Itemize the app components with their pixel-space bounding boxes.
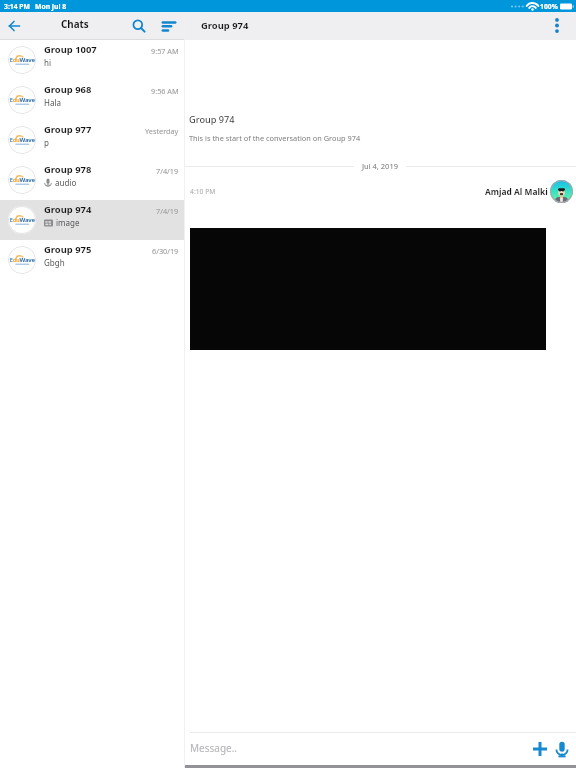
staticText: Group 978 (44, 163, 92, 176)
button[interactable]: E (0, 240, 184, 280)
button[interactable]: E (0, 120, 184, 160)
button[interactable]: Attach (530, 739, 550, 759)
staticText: E (9, 55, 13, 64)
staticText: audio (55, 177, 77, 188)
staticText: Yesterday (145, 126, 179, 136)
staticText: E (9, 135, 13, 144)
staticText: du (13, 136, 20, 144)
button[interactable]: More options (547, 16, 567, 36)
staticText: Group 974 (44, 203, 92, 216)
staticText: E (9, 255, 13, 264)
button[interactable]: E (0, 200, 184, 240)
staticText: Group 974 (189, 113, 235, 126)
button[interactable]: E (0, 80, 184, 120)
staticText: Wave (20, 135, 35, 144)
staticText: E (9, 215, 13, 224)
staticText: Gbgh (44, 257, 65, 268)
staticText: du (13, 96, 20, 104)
staticText: hi (44, 57, 52, 68)
staticText: du (13, 216, 20, 224)
staticText: Group 1007 (44, 43, 97, 56)
button[interactable]: E (0, 40, 184, 80)
staticText: 6/30/19 (152, 246, 179, 256)
staticText: 7/4/19 (156, 166, 179, 176)
button[interactable]: Search (128, 16, 148, 36)
button[interactable]: Record voice (552, 739, 572, 759)
staticText: E (9, 175, 13, 184)
staticText: 3:14 PM (4, 2, 30, 11)
staticText: 9:57 AM (151, 46, 179, 56)
staticText: Amjad Al Malki (485, 186, 548, 197)
staticText: Wave (20, 215, 35, 224)
staticText: du (13, 56, 20, 64)
staticText: This is the start of the conversation on… (189, 133, 361, 143)
staticText: image (56, 217, 80, 228)
staticText: 9:56 AM (151, 86, 179, 96)
staticText: Wave (20, 175, 35, 184)
staticText: Wave (20, 255, 35, 264)
staticText: Message.. (190, 741, 238, 755)
staticText: Jul 4, 2019 (362, 161, 398, 171)
staticText: Chats (61, 18, 89, 31)
staticText: du (13, 176, 20, 184)
button[interactable]: Back (4, 16, 24, 36)
staticText: Group 974 (201, 19, 249, 32)
staticText: Mon Jul 8 (35, 2, 67, 11)
staticText: 7/4/19 (156, 206, 179, 216)
button[interactable]: E (0, 160, 184, 200)
staticText: 100% (540, 2, 558, 11)
staticText: E (9, 95, 13, 104)
staticText: du (13, 256, 20, 264)
staticText: 4:10 PM (190, 187, 216, 196)
staticText: Wave (20, 55, 35, 64)
staticText: Group 975 (44, 243, 92, 256)
staticText: Group 977 (44, 123, 92, 136)
staticText: p (44, 137, 49, 148)
staticText: Group 968 (44, 83, 92, 96)
staticText: Hala (44, 97, 61, 108)
staticText: Wave (20, 95, 35, 104)
button[interactable]: Sort (156, 16, 176, 36)
